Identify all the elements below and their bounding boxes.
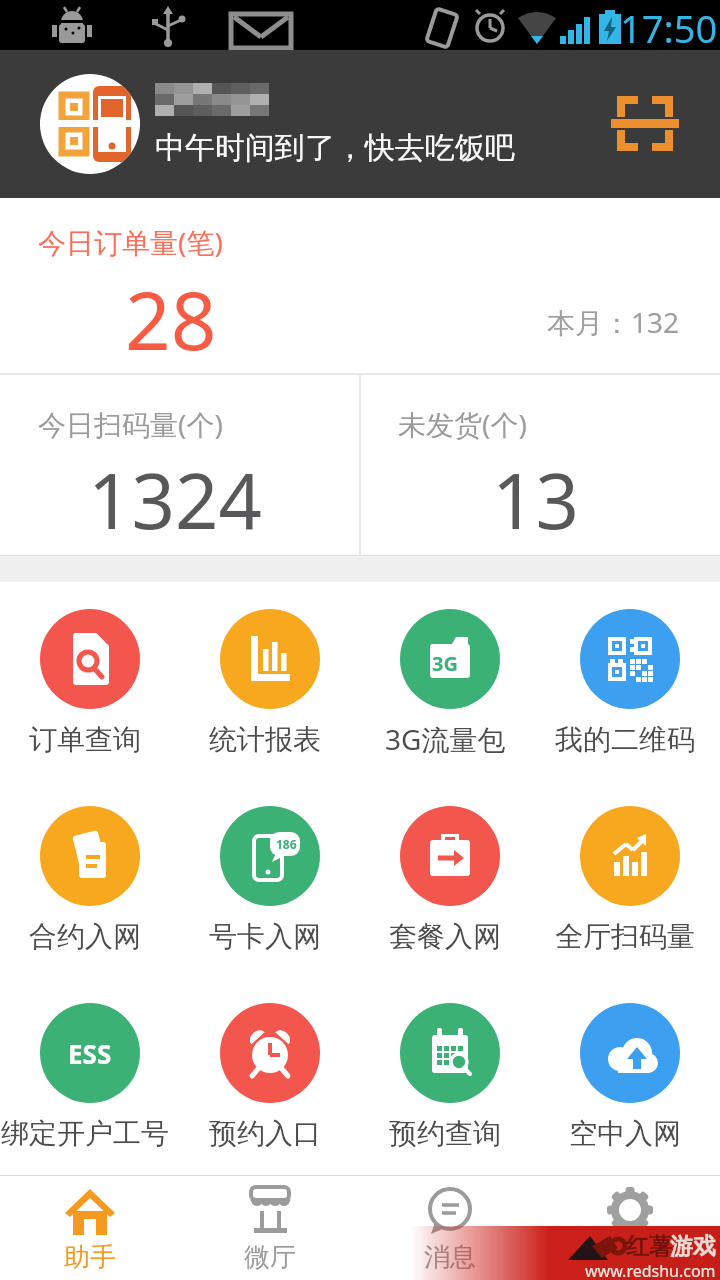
button[interactable]: 合约入网 (0, 779, 180, 976)
button[interactable]: 统计报表 (180, 582, 360, 779)
staticText: 预约入口 (209, 1116, 321, 1151)
staticText: 3G流量包 (385, 720, 506, 758)
staticText: 空中入网 (569, 1116, 681, 1151)
staticText: 我的二维码 (555, 722, 695, 757)
button[interactable]: 我的二维码 (540, 582, 720, 779)
staticText: 全厅扫码量 (555, 919, 695, 954)
staticText: 消息 (424, 1241, 476, 1274)
staticText: 13 (492, 448, 579, 536)
staticText: 设置 (604, 1241, 656, 1274)
button[interactable]: 设置 (560, 1176, 700, 1280)
button[interactable]: 消息 (380, 1176, 520, 1280)
staticText: 红薯 (626, 1232, 672, 1260)
staticText: 绑定开户工号 (1, 1116, 169, 1151)
staticText: 186 (276, 836, 297, 852)
button[interactable]: 空中入网 (540, 976, 720, 1173)
staticText: 17:50 (620, 2, 718, 48)
staticText: ESS (68, 1036, 112, 1071)
button[interactable]: 3G (360, 582, 540, 779)
button[interactable]: 助手 (20, 1176, 160, 1280)
staticText: 游戏 (670, 1232, 716, 1260)
staticText: 合约入网 (29, 919, 141, 954)
staticText: 3G (432, 650, 458, 677)
staticText: 本月：132 (547, 303, 680, 341)
staticText: 微厅 (244, 1241, 296, 1274)
button[interactable]: 全厅扫码量 (540, 779, 720, 976)
staticText: 中午时间到了，快去吃饭吧 (155, 129, 515, 167)
staticText: 助手 (64, 1241, 116, 1274)
staticText: 统计报表 (209, 722, 321, 757)
button[interactable]: 订单查询 (0, 582, 180, 779)
staticText: 今日订单量(笔) (38, 223, 223, 261)
button[interactable]: ESS (0, 976, 180, 1173)
button[interactable]: 微厅 (200, 1176, 340, 1280)
staticText: www.redshu.com (585, 1260, 716, 1278)
button[interactable]: 预约入口 (180, 976, 360, 1173)
button[interactable]: 预约查询 (360, 976, 540, 1173)
staticText: 未发货(个) (398, 405, 527, 443)
staticText: 28 (125, 264, 217, 358)
staticText: 今日扫码量(个) (38, 405, 223, 443)
button[interactable]: 套餐入网 (360, 779, 540, 976)
staticText: 套餐入网 (389, 919, 501, 954)
button[interactable] (40, 74, 140, 174)
button[interactable]: 186 (180, 779, 360, 976)
staticText: 号卡入网 (209, 919, 321, 954)
staticText: 订单查询 (29, 722, 141, 757)
staticText: 预约查询 (389, 1116, 501, 1151)
button[interactable] (600, 90, 690, 160)
staticText: 1324 (88, 448, 262, 536)
